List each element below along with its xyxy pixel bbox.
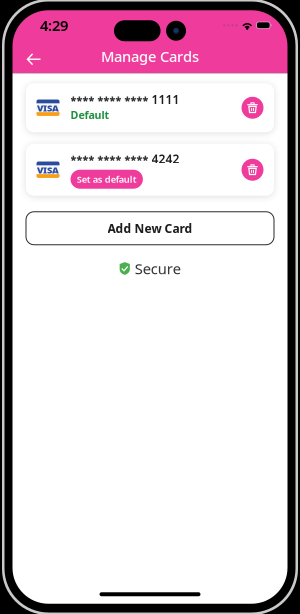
staticText: Manage Cards [101, 46, 199, 66]
staticText: Secure [135, 259, 181, 278]
staticText: Add New Card [107, 220, 192, 236]
staticText: **** **** **** [70, 93, 148, 107]
staticText: VISA [37, 102, 59, 114]
button[interactable]: Set as default [70, 170, 143, 189]
button[interactable]: Delete card [241, 159, 263, 181]
staticText: **** **** **** [70, 153, 148, 167]
staticText: Set as default [77, 173, 137, 185]
staticText: 4242 [151, 151, 179, 167]
staticText: 4:29 [40, 15, 68, 35]
staticText: Default [70, 108, 109, 122]
button[interactable]: Delete card [241, 97, 263, 119]
button[interactable]: Back [21, 44, 46, 68]
staticText: 1111 [151, 91, 179, 107]
staticText: VISA [37, 164, 59, 176]
button[interactable]: Add New Card [26, 212, 274, 245]
